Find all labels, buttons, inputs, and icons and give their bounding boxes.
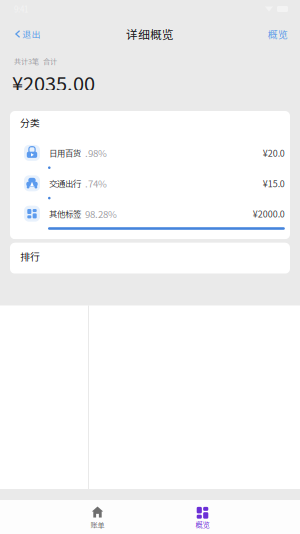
staticText: 交通出行 xyxy=(49,177,81,189)
staticText: 分类 xyxy=(20,115,40,130)
button[interactable]: 账单 xyxy=(47,500,147,534)
staticText: 98.28% xyxy=(85,207,117,221)
staticText: 账单 xyxy=(90,519,104,530)
staticText: 概览 xyxy=(268,27,288,41)
staticText: ¥20.0 xyxy=(263,146,285,159)
staticText: ¥2000.0 xyxy=(253,207,285,220)
staticText: 详细概览 xyxy=(126,25,174,42)
staticText: .98% xyxy=(85,146,107,160)
staticText: 排行 xyxy=(20,249,40,263)
staticText: 退出 xyxy=(22,28,40,40)
staticText: 其他标签 xyxy=(49,208,81,220)
button[interactable]: 概览 xyxy=(256,24,300,44)
staticText: 共计3笔 合计 xyxy=(14,56,57,66)
staticText: ¥2035.00 xyxy=(12,68,95,97)
button[interactable]: 概览 xyxy=(152,500,252,534)
staticText: 日用百货 xyxy=(49,147,81,159)
button[interactable]: 退出 xyxy=(0,24,52,44)
staticText: ¥15.0 xyxy=(263,177,285,190)
staticText: .74% xyxy=(85,176,107,190)
staticText: 概览 xyxy=(195,519,209,530)
